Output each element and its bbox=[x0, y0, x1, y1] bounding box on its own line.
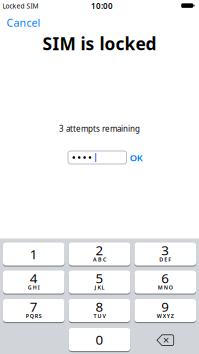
staticText: 6 bbox=[161, 269, 169, 287]
staticText: 10:00 bbox=[91, 1, 113, 11]
staticText: 3 bbox=[161, 241, 169, 259]
staticText: Locked SIM bbox=[2, 1, 38, 10]
button[interactable]: OK bbox=[130, 151, 143, 164]
staticText: 3 attempts remaining bbox=[59, 123, 140, 134]
staticText: T U V bbox=[93, 312, 105, 320]
button[interactable]: 9 bbox=[134, 298, 196, 322]
button[interactable]: 1 bbox=[3, 242, 64, 266]
staticText: D E F bbox=[159, 256, 171, 263]
staticText: M N O bbox=[158, 284, 173, 291]
button[interactable]: Cancel bbox=[6, 15, 40, 30]
staticText: OK bbox=[130, 151, 143, 164]
staticText: 1 bbox=[30, 245, 38, 263]
staticText: J K L bbox=[94, 284, 104, 291]
staticText: 7 bbox=[30, 298, 38, 315]
staticText: P Q R S bbox=[26, 312, 42, 320]
staticText: 4 bbox=[30, 269, 38, 287]
button[interactable]: 8 bbox=[69, 298, 130, 322]
button[interactable]: Delete bbox=[134, 327, 196, 351]
staticText: SIM is locked bbox=[42, 32, 156, 55]
button[interactable]: 0 bbox=[69, 327, 130, 351]
staticText: 5 bbox=[95, 269, 103, 287]
staticText: 2 bbox=[95, 241, 103, 259]
staticText: G H I bbox=[28, 284, 40, 291]
staticText: 9 bbox=[161, 298, 169, 315]
staticText: A B C bbox=[93, 256, 106, 263]
button[interactable]: 7 bbox=[3, 298, 64, 322]
button[interactable]: 6 bbox=[134, 270, 196, 294]
staticText: 8 bbox=[95, 298, 103, 315]
button[interactable]: 4 bbox=[3, 270, 64, 294]
button[interactable]: PIN entry field bbox=[68, 151, 126, 164]
staticText: 0 bbox=[95, 331, 103, 348]
button[interactable]: 2 bbox=[69, 242, 130, 266]
button[interactable]: 5 bbox=[69, 270, 130, 294]
staticText: W X Y Z bbox=[157, 312, 174, 320]
staticText: Cancel bbox=[6, 15, 40, 30]
button[interactable]: 3 bbox=[134, 242, 196, 266]
